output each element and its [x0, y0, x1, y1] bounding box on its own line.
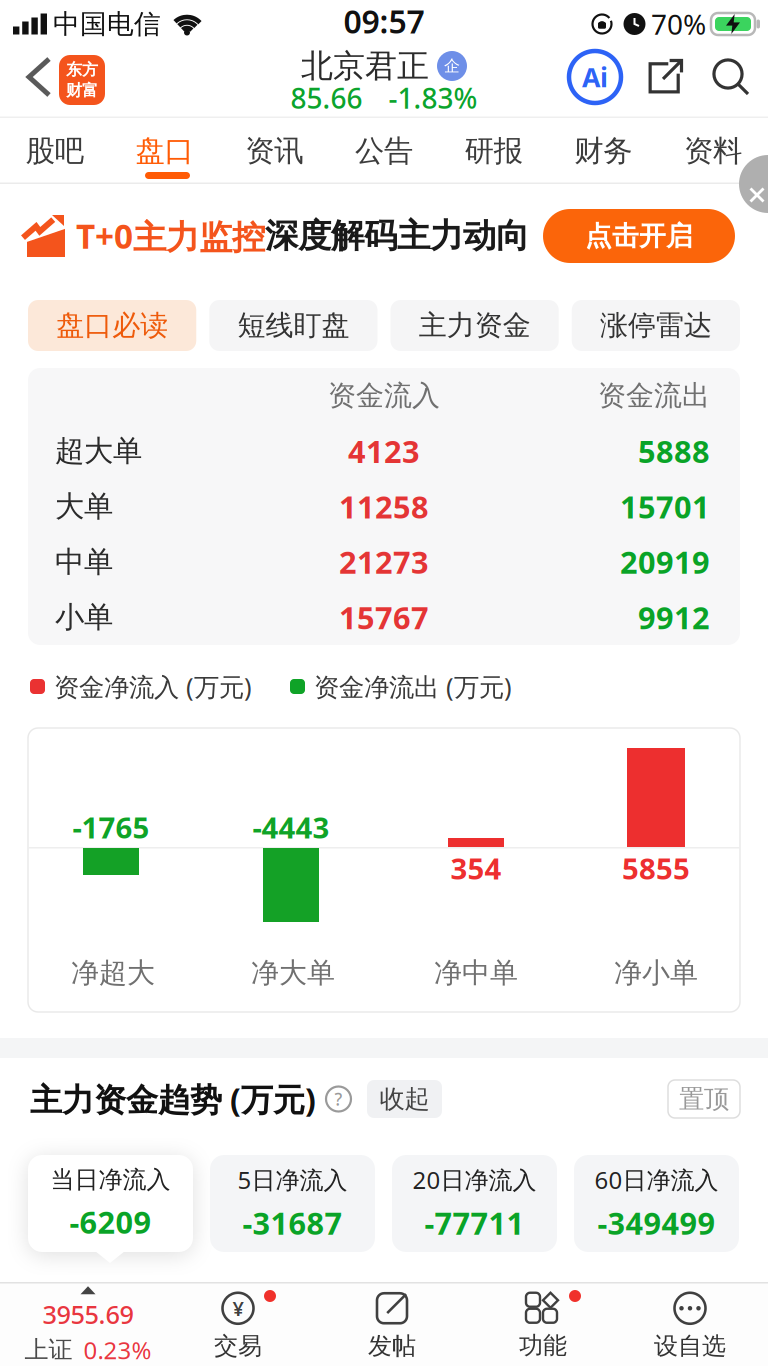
staticText: -4443 [252, 807, 329, 846]
button[interactable]: 关闭 [739, 155, 768, 213]
staticText: 功能 [519, 1331, 567, 1360]
staticText: 小单 [55, 599, 113, 635]
staticText: 资金流入 [328, 378, 440, 413]
staticText: 资金净流出 (万元) [314, 670, 512, 703]
button[interactable]: 60日净流入 [574, 1155, 739, 1252]
button[interactable]: 研报 [439, 124, 548, 178]
staticText: 盘口必读 [56, 308, 168, 343]
staticText: 60日净流入 [594, 1164, 718, 1196]
staticText: 财富 [66, 80, 98, 100]
staticText: 3955.69 [42, 1297, 133, 1331]
staticText: 深度解码主力动向 [265, 215, 529, 256]
staticText: 主力资金趋势 (万元) [30, 1078, 316, 1120]
button[interactable]: 设自选 [630, 1288, 750, 1364]
staticText: 短线盯盘 [237, 308, 349, 343]
staticText: 资讯 [245, 133, 303, 169]
button[interactable]: 帮助 [326, 1086, 351, 1111]
button[interactable]: 资讯 [219, 124, 329, 178]
staticText: 15767 [339, 597, 429, 638]
button[interactable]: 置顶 [668, 1080, 740, 1118]
staticText: ¥ [232, 1295, 243, 1322]
staticText: 东方 [66, 60, 98, 79]
button[interactable]: 股吧 [0, 124, 110, 178]
staticText: 研报 [465, 133, 523, 169]
staticText: 20日净流入 [412, 1164, 536, 1196]
staticText: 资金流出 [598, 378, 710, 413]
staticText: T+0主力监控 [76, 214, 265, 258]
staticText: 北京君正 [301, 46, 429, 86]
staticText: 85.66 [290, 79, 362, 117]
staticText: -77711 [424, 1203, 524, 1243]
button[interactable]: 短线盯盘 [209, 300, 377, 351]
staticText: 4123 [348, 431, 420, 471]
staticText: 20919 [620, 541, 710, 582]
staticText: 9912 [638, 597, 710, 638]
button[interactable]: 当日净流入 [28, 1155, 193, 1252]
staticText: 5日净流入 [237, 1164, 347, 1196]
button[interactable]: 东方财富 [59, 55, 105, 105]
button[interactable]: Ai 助手 [569, 51, 621, 103]
staticText: -1765 [72, 807, 149, 846]
staticText: 净中单 [434, 956, 518, 990]
button[interactable]: 点击开启 [543, 209, 735, 263]
staticText: 资金净流入 (万元) [54, 670, 252, 703]
button[interactable]: 分享 [648, 60, 681, 93]
staticText: -6209 [69, 1201, 151, 1242]
staticText: 发帖 [368, 1331, 416, 1361]
staticText: 当日净流入 [50, 1165, 170, 1194]
staticText: 公告 [355, 133, 413, 169]
staticText: 11258 [339, 486, 429, 527]
staticText: 09:57 [343, 0, 424, 42]
button[interactable]: 发帖 [332, 1288, 452, 1364]
staticText: -349499 [597, 1203, 715, 1243]
button[interactable]: 主力资金 [390, 300, 559, 351]
staticText: 大单 [55, 488, 113, 524]
button[interactable]: 公告 [329, 124, 439, 178]
staticText: 中单 [55, 544, 113, 580]
staticText: -1.83% [388, 79, 477, 117]
staticText: 盘口 [136, 133, 194, 169]
staticText: 点击开启 [585, 220, 693, 252]
staticText: Ai [582, 59, 608, 95]
staticText: 5855 [622, 848, 690, 887]
button[interactable]: 功能 [483, 1288, 603, 1364]
staticText: 15701 [620, 486, 710, 527]
staticText: 5888 [638, 431, 710, 471]
staticText: 超大单 [55, 433, 142, 469]
staticText: ? [334, 1087, 342, 1110]
staticText: 净小单 [614, 956, 698, 990]
staticText: 交易 [214, 1331, 262, 1361]
staticText: 资料 [684, 133, 742, 169]
button[interactable]: 搜索 [711, 57, 749, 95]
button[interactable]: 资料 [658, 124, 768, 178]
button[interactable]: 3955.69 [3, 1286, 173, 1366]
staticText: 主力资金 [419, 308, 531, 343]
staticText: 70% [651, 5, 706, 43]
button[interactable]: 5日净流入 [210, 1155, 375, 1252]
button[interactable]: 收起 [367, 1080, 442, 1118]
staticText: 企 [444, 56, 460, 76]
staticText: 涨停雷达 [600, 308, 712, 343]
staticText: 354 [450, 848, 501, 887]
staticText: 上证 [24, 1335, 72, 1365]
staticText: 设自选 [654, 1331, 726, 1361]
staticText: 净超大 [71, 956, 155, 990]
staticText: 中国电信 [53, 8, 161, 40]
button[interactable]: 盘口 [110, 124, 219, 178]
button[interactable]: 涨停雷达 [572, 300, 740, 351]
button[interactable]: 盘口必读 [28, 300, 196, 351]
staticText: -31687 [242, 1203, 342, 1243]
button[interactable]: 财务 [548, 124, 658, 178]
staticText: 股吧 [26, 133, 84, 169]
button[interactable]: Back [19, 49, 59, 105]
staticText: 0.23% [83, 1334, 151, 1366]
staticText: 财务 [574, 133, 632, 169]
button[interactable]: ¥ [178, 1288, 298, 1364]
staticText: 净大单 [251, 956, 335, 990]
button[interactable]: 20日净流入 [392, 1155, 557, 1252]
staticText: 置顶 [679, 1083, 729, 1114]
staticText: 收起 [379, 1083, 429, 1114]
staticText: 21273 [339, 541, 429, 582]
